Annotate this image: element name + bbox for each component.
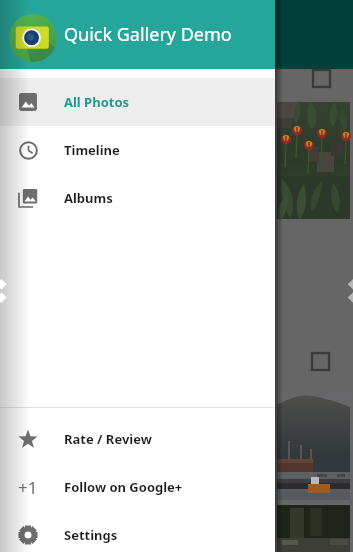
staticText: Settings <box>64 526 118 544</box>
button[interactable]: Quick Gallery Demo <box>0 0 275 69</box>
other: Settings <box>18 525 38 545</box>
staticText: +1 <box>18 476 38 499</box>
button[interactable]: Albums <box>0 174 275 222</box>
staticText: Timeline <box>64 141 120 159</box>
staticText: Follow on Google+ <box>64 478 183 496</box>
staticText: Rate / Review <box>64 430 152 448</box>
staticText: Quick Gallery Demo <box>64 22 232 47</box>
button[interactable]: Rate / Review <box>0 415 275 463</box>
other: Quick Gallery Demo <box>9 14 57 62</box>
staticText: All Photos <box>64 93 130 111</box>
button[interactable]: +1 <box>0 463 275 511</box>
button[interactable]: Settings <box>0 511 275 552</box>
button[interactable]: Timeline <box>0 126 275 174</box>
button[interactable]: All Photos <box>0 78 275 126</box>
staticText: Albums <box>64 189 113 207</box>
